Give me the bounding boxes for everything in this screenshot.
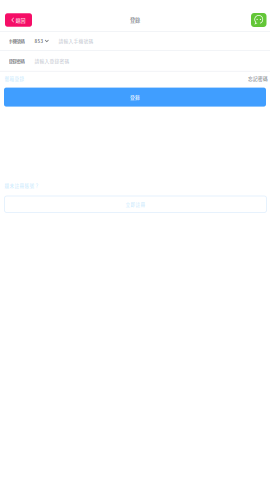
staticText: 還未註冊賬號？ xyxy=(4,182,39,189)
staticText: 返回 xyxy=(15,16,25,24)
button[interactable]: 登錄 xyxy=(4,88,266,107)
staticText: 立即註冊 xyxy=(125,201,145,208)
button[interactable]: 853 xyxy=(34,37,48,45)
staticText: 郵箱登錄 xyxy=(4,75,24,82)
button[interactable]: 聯絡客服 xyxy=(251,13,266,27)
staticText: 登錄密碼 xyxy=(8,58,24,64)
staticText: 登錄 xyxy=(130,94,140,101)
staticText: 手機號碼 xyxy=(8,38,24,44)
staticText: 忘記密碼 xyxy=(248,75,268,82)
staticText: 登錄 xyxy=(130,16,140,24)
staticText: 請輸入手機號碼 xyxy=(58,37,93,44)
button[interactable]: 忘記密碼 xyxy=(245,72,270,83)
button[interactable]: 郵箱登錄 xyxy=(0,72,27,83)
staticText: 853 xyxy=(34,38,43,44)
button[interactable]: 返回 xyxy=(5,13,32,27)
staticText: 請輸入登錄密碼 xyxy=(34,57,69,64)
button[interactable]: 立即註冊 xyxy=(4,196,266,212)
